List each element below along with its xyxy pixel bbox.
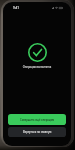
button[interactable]: Вернуться на главную bbox=[8, 127, 66, 137]
button[interactable]: Совершить ещё операцию bbox=[8, 114, 66, 125]
staticText: Совершить ещё операцию bbox=[20, 118, 55, 122]
staticText: 9:41 bbox=[13, 6, 19, 10]
staticText: Операция выполнена bbox=[3, 65, 71, 69]
staticText: Вернуться на главную bbox=[23, 130, 52, 134]
